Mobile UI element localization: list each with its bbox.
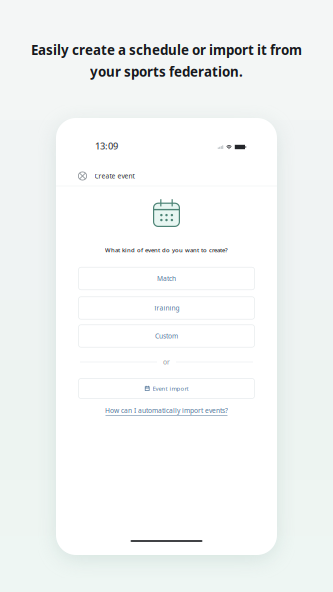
staticText: Match: [157, 274, 176, 283]
staticText: Custom: [155, 332, 178, 340]
staticText: Event import: [152, 384, 188, 392]
button[interactable]: Event import: [78, 378, 254, 398]
staticText: 13:09: [95, 140, 118, 152]
staticText: Easily create a schedule or import it fr…: [31, 41, 302, 59]
staticText: your sports federation.: [90, 63, 243, 80]
staticText: What kind of event do you want to create…: [105, 246, 228, 254]
button[interactable]: Custom: [78, 325, 254, 347]
button[interactable]: Match: [78, 267, 254, 290]
button[interactable]: Training: [78, 297, 254, 319]
staticText: Training: [153, 304, 179, 312]
staticText: Create event: [94, 172, 134, 180]
staticText: How can I automatically import events?: [105, 406, 228, 415]
button[interactable]: How can I automatically import events?: [105, 406, 228, 416]
button[interactable]: Close: [75, 169, 89, 183]
staticText: or: [163, 358, 170, 366]
